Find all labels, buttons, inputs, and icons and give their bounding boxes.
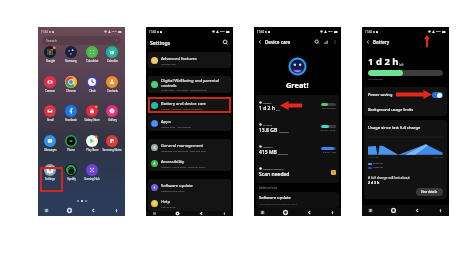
- button[interactable]: General management: [151, 139, 228, 155]
- button[interactable]: Background usage limits: [368, 102, 443, 116]
- button[interactable]: More options: [332, 39, 338, 45]
- staticText: TalkBack · Mono audio · Assistant menu: [161, 165, 206, 168]
- staticText: 3.8 GB / 4 GB: [323, 151, 336, 154]
- button[interactable]: Back: [257, 39, 263, 45]
- button[interactable]: Apps: [151, 115, 228, 131]
- button[interactable]: Statistics: [323, 39, 329, 45]
- staticText: Chrome: [66, 89, 76, 93]
- staticText: Search: [46, 38, 57, 43]
- button[interactable]: Google: [40, 46, 60, 66]
- staticText: Settings: [45, 177, 55, 181]
- staticText: 11:34: [365, 30, 372, 34]
- button[interactable]: Messages: [40, 135, 60, 155]
- staticText: Camera: [45, 89, 55, 93]
- button[interactable]: Back: [365, 39, 371, 45]
- staticText: Phone: [67, 148, 75, 152]
- button[interactable]: Chrome: [61, 76, 81, 96]
- button[interactable]: Hide keyboard: [437, 207, 444, 214]
- staticText: Google: [46, 59, 55, 63]
- staticText: Contacts: [107, 89, 118, 93]
- staticText: Messages: [44, 148, 57, 152]
- button[interactable]: Facebook: [61, 105, 81, 125]
- button[interactable]: View details: [416, 188, 443, 196]
- button[interactable]: Home: [66, 207, 73, 214]
- button[interactable]: Recent apps: [43, 207, 50, 214]
- staticText: Calculator: [86, 59, 99, 63]
- button[interactable]: Phone: [61, 135, 81, 155]
- button[interactable]: Play Store: [82, 135, 102, 155]
- button[interactable]: Power saving: [368, 87, 443, 102]
- button[interactable]: Gaming Hub: [82, 164, 102, 184]
- button[interactable]: Hide keyboard: [113, 207, 120, 214]
- staticText: Scan needed: [259, 171, 290, 178]
- staticText: 48%: [436, 30, 441, 33]
- button[interactable]: Battery and device care: [151, 97, 228, 113]
- staticText: Download and install: [161, 189, 185, 192]
- button[interactable]: Home: [174, 211, 181, 216]
- staticText: Usage since last full charge: [368, 125, 421, 131]
- staticText: Background usage limits: [368, 107, 414, 112]
- button[interactable]: Software update: [151, 179, 228, 195]
- button[interactable]: Samsung Notes: [102, 135, 122, 155]
- button[interactable]: Hide keyboard: [221, 211, 228, 216]
- button[interactable]: Search: [314, 39, 320, 45]
- staticText: 1 d 2 h: [259, 105, 275, 112]
- button[interactable]: Home: [282, 209, 289, 216]
- staticText: 48%: [328, 30, 333, 33]
- staticText: User manual: [161, 205, 176, 208]
- button[interactable]: Search: [42, 36, 121, 45]
- staticText: A full charge will last about: [368, 175, 410, 179]
- button[interactable]: Camera: [40, 76, 60, 96]
- button[interactable]: Contacts: [102, 76, 122, 96]
- button[interactable]: Recent apps: [259, 209, 266, 216]
- staticText: Memory: [263, 145, 273, 148]
- staticText: General management: [161, 143, 204, 149]
- staticText: Advanced features: [161, 56, 197, 62]
- button[interactable]: Help: [151, 195, 228, 211]
- staticText: 415 MB: [259, 149, 277, 156]
- button[interactable]: Calculator: [82, 46, 102, 66]
- button[interactable]: Galaxy Store: [82, 105, 102, 125]
- button[interactable]: Back: [306, 209, 313, 216]
- staticText: Software update: [259, 195, 291, 201]
- staticText: 13.8 GB: [259, 127, 278, 134]
- staticText: 11:34: [257, 30, 264, 34]
- button[interactable]: Recent apps: [367, 207, 374, 214]
- staticText: Help: [161, 199, 170, 205]
- button[interactable]: Accessibility: [151, 155, 228, 171]
- staticText: Facebook: [65, 118, 77, 122]
- staticText: View details: [421, 190, 438, 194]
- staticText: Power saving: [368, 92, 393, 97]
- button[interactable]: Storage: [259, 117, 336, 139]
- staticText: 1 d 2 h: [368, 55, 399, 68]
- staticText: 11:34: [41, 30, 48, 34]
- button[interactable]: Battery: [259, 95, 336, 117]
- button[interactable]: Recent apps: [151, 211, 158, 216]
- staticText: Device care: [265, 39, 291, 45]
- staticText: 48%: [112, 30, 117, 33]
- staticText: Android Auto: [161, 62, 176, 65]
- button[interactable]: Gallery: [102, 105, 122, 125]
- button[interactable]: Memory: [259, 139, 336, 161]
- staticText: 11:34: [149, 30, 156, 34]
- button[interactable]: Spotify: [61, 164, 81, 184]
- button[interactable]: Hide keyboard: [329, 209, 336, 216]
- button[interactable]: Samsung: [61, 46, 81, 66]
- button[interactable]: Settings: [40, 164, 60, 184]
- staticText: available: [279, 130, 289, 133]
- button[interactable]: Email: [40, 105, 60, 125]
- button[interactable]: Back: [90, 207, 97, 214]
- button[interactable]: Clock: [82, 76, 102, 96]
- staticText: Samsung Notes: [102, 148, 122, 152]
- button[interactable]: Back: [198, 211, 205, 216]
- button[interactable]: Search: [222, 39, 229, 46]
- button[interactable]: Device protection: [259, 161, 336, 183]
- button[interactable]: Software update: [256, 192, 339, 208]
- button[interactable]: Home: [390, 207, 397, 214]
- button[interactable]: Calendar: [102, 46, 122, 66]
- button[interactable]: Digital Wellbeing and parental controls: [151, 76, 228, 93]
- staticText: 48%: [220, 30, 225, 33]
- staticText: left: [399, 63, 404, 67]
- button[interactable]: Back: [414, 207, 421, 214]
- button[interactable]: Advanced features: [151, 52, 228, 68]
